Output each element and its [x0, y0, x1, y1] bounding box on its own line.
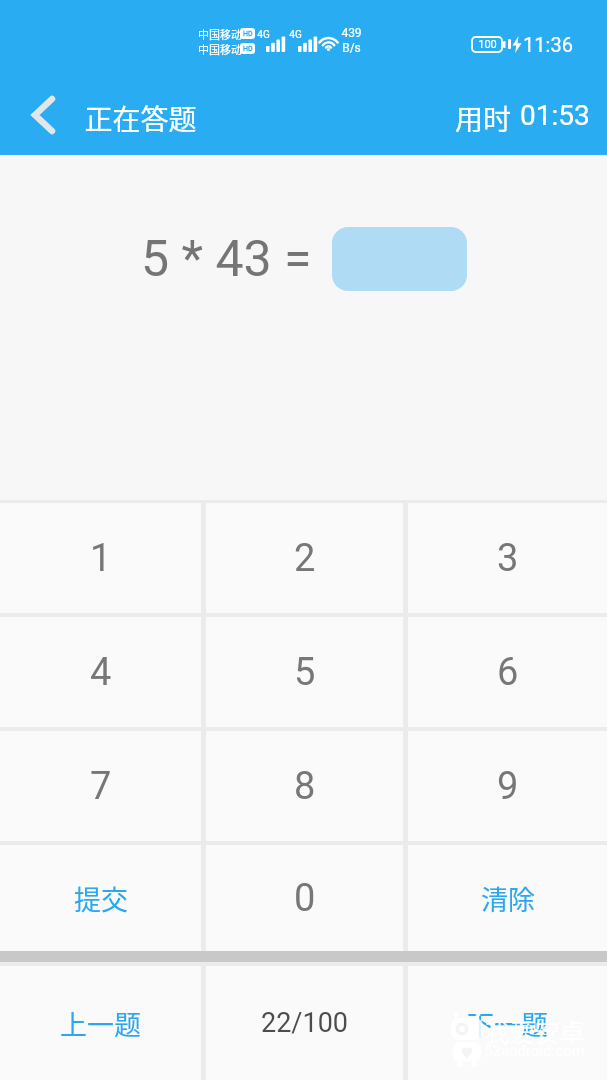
button[interactable]: 5	[206, 617, 403, 727]
staticText: 01:53	[520, 99, 590, 132]
staticText: 8	[294, 764, 316, 809]
staticText: 中国移动	[198, 26, 242, 41]
button[interactable]: 6	[408, 617, 607, 727]
button[interactable]: 1	[0, 503, 201, 613]
staticText: 中国移动	[198, 41, 242, 56]
staticText: 5 * 43 =	[141, 230, 324, 289]
staticText: 1	[90, 536, 112, 581]
button[interactable]: 0	[206, 845, 403, 951]
staticText: 6	[497, 650, 519, 695]
staticText: 0	[294, 876, 316, 921]
button[interactable]: 3	[408, 503, 607, 613]
staticText: 100	[478, 38, 497, 51]
button[interactable]: 9	[408, 731, 607, 841]
staticText: 下一题	[467, 1004, 548, 1043]
staticText: 用时	[455, 98, 512, 132]
button[interactable]: 4	[0, 617, 201, 727]
button[interactable]: 22/100	[206, 966, 403, 1080]
staticText: 4	[90, 650, 112, 695]
staticText: 4G	[289, 29, 302, 41]
button[interactable]: 8	[206, 731, 403, 841]
button[interactable]: 2	[206, 503, 403, 613]
button[interactable]	[18, 92, 64, 138]
staticText: 提交	[74, 879, 128, 918]
button[interactable]	[332, 227, 467, 291]
staticText: 439	[341, 26, 362, 40]
staticText: 正在答题	[84, 98, 197, 132]
staticText: 我爱安卓	[484, 1013, 585, 1049]
staticText: 11:36	[523, 33, 573, 56]
button[interactable]: 上一题	[0, 966, 201, 1080]
staticText: 清除	[481, 879, 535, 918]
staticText: HD	[243, 45, 253, 53]
staticText: 3	[497, 536, 519, 581]
staticText: 22/100	[261, 1007, 349, 1039]
staticText: 2	[294, 536, 316, 581]
staticText: HD	[243, 30, 253, 38]
button[interactable]: 7	[0, 731, 201, 841]
button[interactable]: 清除	[408, 845, 607, 951]
button[interactable]: 下一题	[408, 966, 607, 1080]
staticText: 7	[90, 764, 112, 809]
staticText: 9	[497, 764, 519, 809]
staticText: B/s	[342, 41, 361, 55]
staticText: 4G	[257, 29, 270, 41]
staticText: 上一题	[60, 1004, 141, 1043]
staticText: 5	[294, 650, 316, 695]
button[interactable]: 提交	[0, 845, 201, 951]
